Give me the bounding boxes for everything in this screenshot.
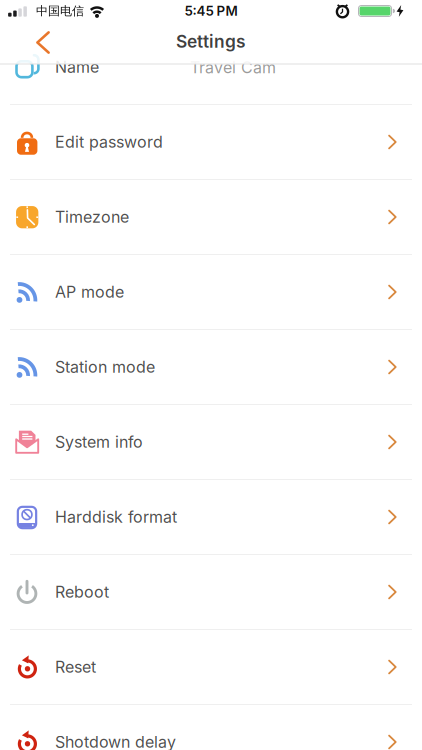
staticText: AP mode	[55, 283, 124, 301]
staticText: Shotdown delay	[55, 733, 176, 750]
button[interactable]: Reboot	[0, 555, 422, 630]
staticText: Reboot	[55, 583, 109, 601]
staticText: 5:45 PM	[184, 3, 237, 19]
staticText: Travel Cam	[190, 58, 276, 77]
button[interactable]: AP mode	[0, 255, 422, 330]
staticText: Harddisk format	[55, 508, 177, 526]
staticText: Timezone	[55, 208, 129, 226]
staticText: Station mode	[55, 358, 155, 376]
button[interactable]: System info	[0, 405, 422, 480]
staticText: System info	[55, 433, 143, 451]
staticText: Edit password	[55, 133, 163, 151]
staticText: Settings	[176, 31, 246, 52]
button[interactable]: Back	[36, 31, 50, 54]
button[interactable]: Shotdown delay	[0, 705, 422, 750]
button[interactable]: Station mode	[0, 330, 422, 405]
button[interactable]: Name	[0, 30, 422, 105]
button[interactable]: Timezone	[0, 180, 422, 255]
button[interactable]: Edit password	[0, 105, 422, 180]
button[interactable]: Reset	[0, 630, 422, 705]
staticText: Name	[55, 58, 99, 76]
staticText: Reset	[55, 658, 96, 676]
button[interactable]: Harddisk format	[0, 480, 422, 555]
staticText: 中国电信	[36, 4, 84, 18]
